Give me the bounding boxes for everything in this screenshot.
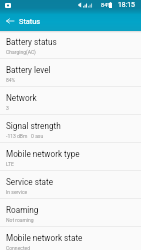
button[interactable]: Battery status [0,31,141,59]
button[interactable]: Mobile network type [0,143,141,171]
staticText: LTE [6,161,14,167]
button[interactable]: Navigate up [0,11,19,31]
staticText: 84% [6,77,16,83]
staticText: Service state [6,177,54,187]
staticText: Roaming [6,205,39,215]
staticText: Battery status [6,37,57,47]
staticText: 18:15 [118,1,135,9]
button[interactable]: Service state [0,171,141,199]
staticText: Network [6,93,37,103]
staticText: 84% [101,2,112,9]
staticText: Status [19,17,41,26]
staticText: Charging(AC) [6,49,36,55]
staticText: Mobile network state [6,233,83,243]
button[interactable]: Network [0,87,141,115]
staticText: Battery level [6,65,51,75]
staticText: -113 dBm 0 asu [6,133,44,139]
staticText: Mobile network type [6,149,80,159]
staticText: In service [6,189,28,195]
button[interactable]: Roaming [0,199,141,227]
button[interactable]: Mobile network state [0,227,141,250]
staticText: Connected [6,245,31,250]
staticText: Signal strength [6,121,61,131]
staticText: Not roaming [6,217,34,223]
button[interactable]: Battery level [0,59,141,87]
button[interactable]: Signal strength [0,115,141,143]
staticText: 3 [6,105,9,111]
